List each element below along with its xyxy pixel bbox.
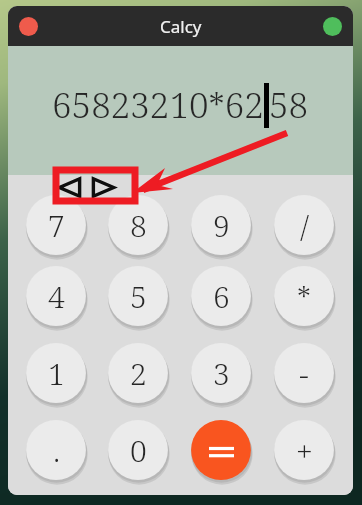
staticText: 3	[213, 353, 230, 394]
button[interactable]: 3	[190, 342, 252, 404]
button[interactable]: -	[273, 342, 335, 404]
button[interactable]: 1	[25, 342, 87, 404]
staticText: 58	[269, 81, 309, 129]
button[interactable]: Move cursor left	[55, 175, 83, 199]
button[interactable]	[190, 419, 252, 481]
staticText: /	[300, 205, 309, 246]
button[interactable]: 8	[107, 194, 169, 256]
button[interactable]: 6	[190, 265, 252, 327]
button[interactable]: +	[273, 419, 335, 481]
staticText: 6	[213, 276, 230, 317]
button[interactable]: 4	[25, 265, 87, 327]
button[interactable]: Close window	[19, 17, 38, 36]
button[interactable]: 0	[107, 419, 169, 481]
staticText: 5	[130, 276, 147, 317]
staticText: 9	[213, 205, 230, 246]
staticText: 1	[48, 353, 65, 394]
button[interactable]: Maximize window	[323, 17, 342, 36]
button[interactable]: /	[273, 194, 335, 256]
button[interactable]: Move cursor right	[89, 175, 117, 199]
staticText: 65823210*62	[52, 81, 264, 129]
button[interactable]: 7	[25, 194, 87, 256]
button[interactable]: 9	[190, 194, 252, 256]
staticText: -	[299, 353, 309, 394]
button[interactable]: *	[273, 265, 335, 327]
staticText: +	[296, 430, 313, 471]
staticText: .	[53, 430, 60, 471]
staticText: 4	[48, 276, 65, 317]
button[interactable]: .	[25, 419, 87, 481]
staticText: 2	[130, 353, 147, 394]
button[interactable]: 5	[107, 265, 169, 327]
staticText: 8	[130, 205, 147, 246]
staticText: 0	[130, 430, 147, 471]
button[interactable]: 2	[107, 342, 169, 404]
staticText: 7	[48, 205, 65, 246]
staticText: *	[297, 276, 311, 317]
staticText: Calcy	[160, 15, 202, 38]
